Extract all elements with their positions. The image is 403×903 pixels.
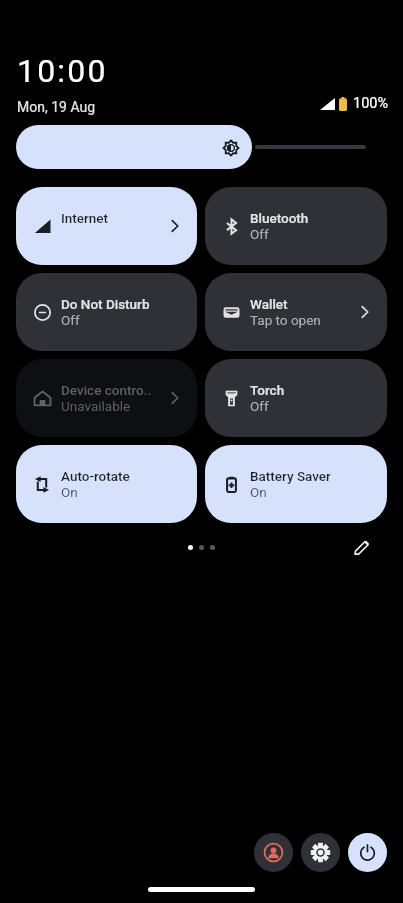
button[interactable]: Device contro.. bbox=[16, 359, 197, 437]
staticText: Off bbox=[250, 398, 269, 414]
staticText: 100% bbox=[353, 95, 389, 112]
staticText: Device contro.. bbox=[61, 382, 152, 398]
staticText: Auto-rotate bbox=[61, 468, 130, 484]
button[interactable]: Battery Saver bbox=[205, 445, 387, 523]
button[interactable]: Bluetooth bbox=[205, 187, 387, 265]
staticText: Bluetooth bbox=[250, 210, 309, 226]
staticText: 10:00 bbox=[17, 52, 108, 90]
staticText: Do Not Disturb bbox=[61, 296, 150, 312]
button[interactable]: Wallet bbox=[205, 273, 387, 351]
button[interactable]: Internet bbox=[16, 187, 197, 265]
staticText: On bbox=[250, 484, 267, 500]
staticText: Unavailable bbox=[61, 398, 131, 414]
button[interactable]: Power bbox=[348, 833, 387, 872]
button[interactable]: Brightness bbox=[16, 125, 252, 169]
staticText: Off bbox=[250, 226, 269, 242]
staticText: Off bbox=[61, 312, 80, 328]
staticText: Mon, 19 Aug bbox=[17, 99, 96, 115]
button[interactable]: Torch bbox=[205, 359, 387, 437]
staticText: Tap to open bbox=[250, 312, 321, 328]
staticText: Torch bbox=[250, 382, 285, 398]
staticText: Battery Saver bbox=[250, 468, 331, 484]
button[interactable]: Edit tiles bbox=[349, 535, 373, 559]
staticText: Internet bbox=[61, 210, 109, 226]
button[interactable]: Settings bbox=[301, 833, 340, 872]
button[interactable]: Account bbox=[254, 833, 293, 872]
button[interactable]: Do Not Disturb bbox=[16, 273, 197, 351]
staticText: Wallet bbox=[250, 296, 288, 312]
staticText: On bbox=[61, 484, 78, 500]
button[interactable]: Auto-rotate bbox=[16, 445, 197, 523]
